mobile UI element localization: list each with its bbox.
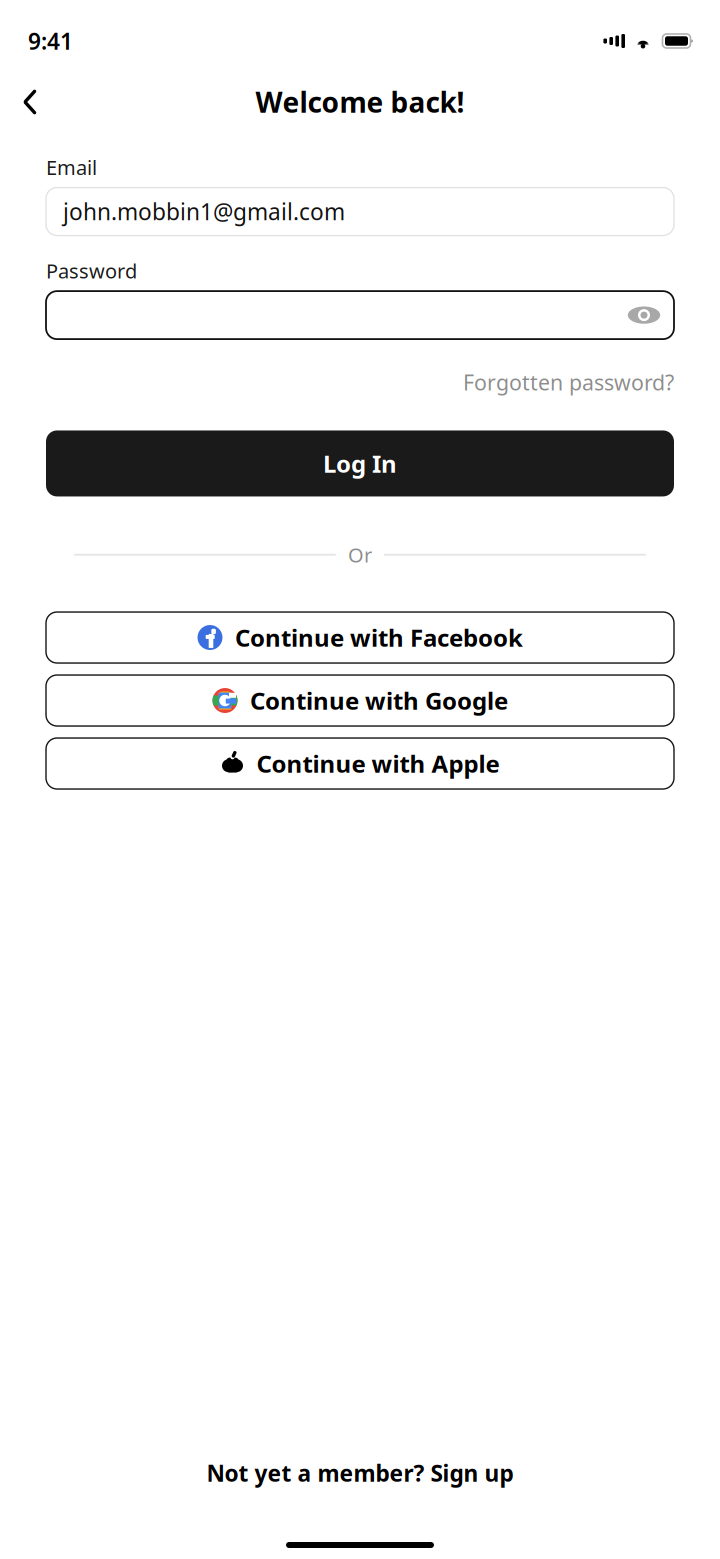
button[interactable]: Show password: [624, 295, 664, 335]
staticText: Log In: [323, 447, 397, 479]
button[interactable]: Log In: [46, 430, 674, 496]
button[interactable]: Continue with Google: [46, 675, 674, 726]
staticText: Email: [46, 154, 97, 181]
staticText: Not yet a member? Sign up: [206, 1458, 513, 1488]
staticText: 9:41: [28, 26, 73, 56]
staticText: Or: [348, 541, 372, 568]
staticText: Password: [46, 258, 137, 284]
staticText: Continue with Apple: [256, 748, 499, 779]
button[interactable]: Forgotten password?: [463, 360, 674, 404]
button[interactable]: Not yet a member? Sign up: [190, 1448, 529, 1498]
staticText: Continue with Facebook: [235, 622, 523, 653]
button[interactable]: Continue with Apple: [46, 738, 674, 789]
staticText: Forgotten password?: [463, 368, 674, 396]
button[interactable]: Back: [8, 80, 52, 124]
staticText: Welcome back!: [255, 83, 464, 121]
staticText: john.mobbin1@gmail.com: [63, 196, 345, 227]
staticText: Continue with Google: [250, 685, 508, 716]
button[interactable]: Continue with Facebook: [46, 612, 674, 663]
